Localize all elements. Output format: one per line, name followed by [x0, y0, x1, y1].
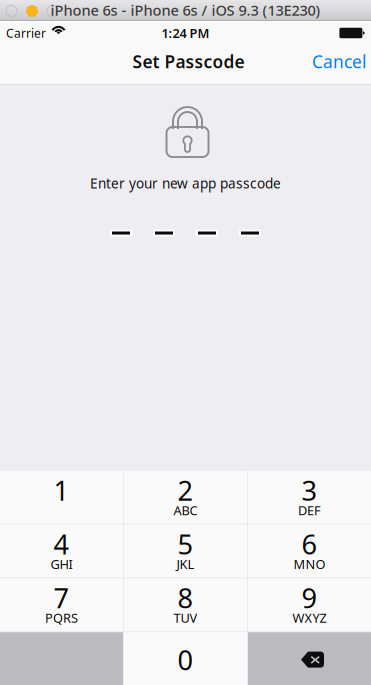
staticText: 5 — [177, 525, 193, 562]
staticText: DEF — [298, 502, 321, 519]
button[interactable]: 8 — [124, 578, 247, 631]
button[interactable]: 0 — [124, 632, 247, 685]
staticText: Cancel — [312, 50, 366, 73]
staticText: 1:24 PM — [161, 24, 209, 42]
staticText: Carrier — [6, 25, 46, 41]
staticText: iPhone 6s - iPhone 6s / iOS 9.3 (13E230) — [50, 0, 320, 20]
button[interactable]: Zoom window — [47, 5, 58, 16]
staticText: JKL — [176, 555, 194, 573]
staticText: 7 — [53, 579, 69, 616]
button[interactable]: Close window — [6, 5, 17, 16]
button[interactable]: 9 — [248, 578, 371, 631]
button[interactable]: 2 — [124, 471, 247, 524]
staticText: ABC — [173, 502, 197, 519]
staticText: 1 — [53, 472, 69, 509]
button[interactable]: Delete — [248, 632, 371, 685]
staticText: 0 — [177, 641, 193, 678]
button[interactable]: 3 — [248, 471, 371, 524]
staticText: 4 — [53, 525, 69, 562]
staticText: PQRS — [45, 609, 78, 627]
staticText: 6 — [301, 525, 317, 562]
staticText: 2 — [177, 472, 193, 509]
staticText: 9 — [301, 579, 317, 616]
staticText: 3 — [301, 472, 317, 509]
staticText: 8 — [177, 579, 193, 616]
staticText: Enter your new app passcode — [90, 174, 281, 192]
button[interactable]: Minimise window — [26, 5, 38, 17]
staticText: WXYZ — [292, 609, 326, 627]
button[interactable]: 6 — [248, 525, 371, 578]
button[interactable]: 4 — [0, 525, 123, 578]
button[interactable]: 1 — [0, 471, 123, 524]
staticText: TUV — [173, 609, 197, 627]
staticText: GHI — [50, 555, 72, 573]
button[interactable]: 7 — [0, 578, 123, 631]
staticText: Set Passcode — [132, 50, 244, 73]
button[interactable]: 5 — [124, 525, 247, 578]
button[interactable]: Cancel — [307, 44, 371, 85]
staticText: MNO — [293, 555, 325, 573]
